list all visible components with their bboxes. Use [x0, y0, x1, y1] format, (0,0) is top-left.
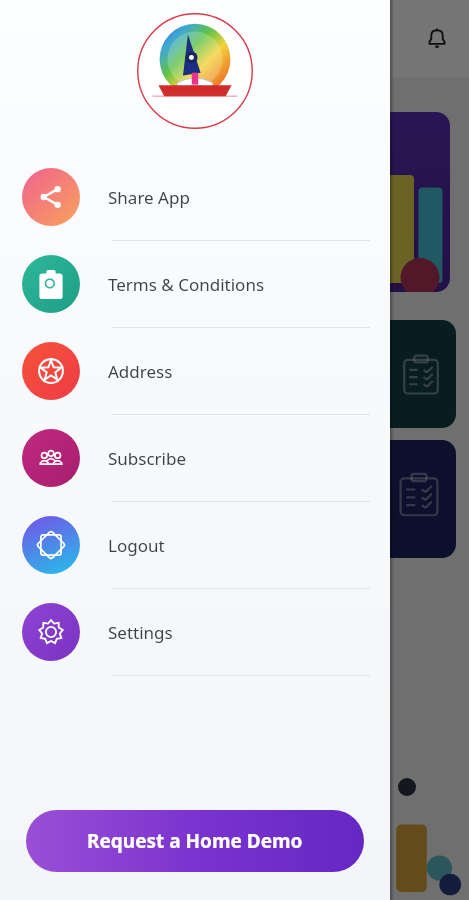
staticText: Terms & Conditions	[108, 273, 265, 296]
staticText: Subscribe	[108, 447, 187, 470]
button[interactable]: Subscribe	[0, 415, 390, 501]
button[interactable]: Address	[0, 328, 390, 414]
button[interactable]: Request a Home Demo	[26, 810, 364, 872]
staticText: Address	[108, 360, 173, 383]
button[interactable]: Share App	[0, 154, 390, 240]
staticText: Request a Home Demo	[87, 828, 303, 854]
button[interactable]: Terms & Conditions	[0, 241, 390, 327]
button[interactable]: Settings	[0, 589, 390, 675]
button[interactable]: Logout	[0, 502, 390, 588]
staticText: Settings	[108, 621, 173, 644]
staticText: Logout	[108, 534, 165, 557]
button[interactable]: Notifications	[418, 20, 456, 58]
staticText: Share App	[108, 186, 190, 209]
